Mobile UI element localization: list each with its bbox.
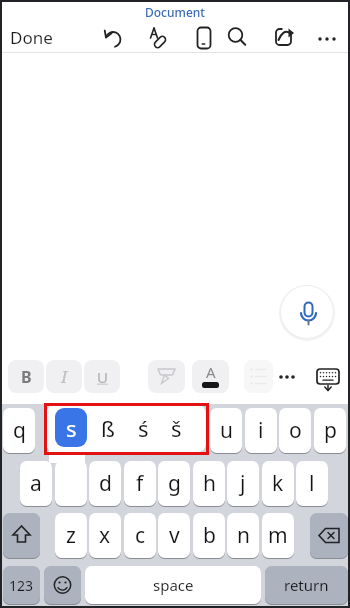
staticText: A: [206, 362, 216, 382]
button[interactable]: I: [46, 360, 82, 393]
staticText: k: [272, 469, 284, 498]
staticText: Document: [145, 4, 205, 20]
staticText: 123: [9, 576, 34, 595]
button[interactable]: z: [55, 513, 87, 558]
button[interactable]: U: [84, 360, 120, 393]
button[interactable]: 123: [3, 566, 40, 604]
staticText: v: [169, 521, 180, 550]
button[interactable]: [310, 513, 348, 558]
button[interactable]: m: [262, 513, 294, 558]
button[interactable]: [96, 22, 128, 54]
staticText: u: [220, 416, 233, 445]
button[interactable]: l: [296, 461, 328, 506]
button[interactable]: g: [158, 461, 190, 506]
button[interactable]: [244, 360, 273, 393]
staticText: U: [97, 367, 108, 387]
button[interactable]: u: [210, 408, 242, 453]
button[interactable]: B: [8, 360, 44, 393]
button[interactable]: [221, 21, 253, 53]
button[interactable]: [267, 21, 299, 53]
button[interactable]: h: [193, 461, 225, 506]
staticText: h: [203, 469, 216, 498]
button[interactable]: n: [227, 513, 259, 558]
staticText: I: [61, 365, 68, 388]
button[interactable]: A: [192, 360, 229, 393]
staticText: space: [153, 575, 194, 595]
button[interactable]: [311, 23, 343, 55]
button[interactable]: x: [89, 513, 121, 558]
button[interactable]: š: [162, 405, 190, 450]
button[interactable]: [44, 566, 81, 604]
staticText: return: [284, 575, 329, 595]
button[interactable]: k: [262, 461, 294, 506]
staticText: p: [324, 416, 337, 445]
staticText: Done: [10, 26, 53, 49]
staticText: l: [309, 469, 315, 498]
button[interactable]: [188, 22, 220, 54]
button[interactable]: f: [124, 461, 156, 506]
button[interactable]: [273, 363, 301, 391]
button[interactable]: d: [89, 461, 121, 506]
button[interactable]: Done: [10, 23, 62, 51]
button[interactable]: v: [158, 513, 190, 558]
button[interactable]: space: [85, 566, 261, 604]
button[interactable]: [3, 513, 40, 558]
button[interactable]: [148, 360, 185, 393]
staticText: a: [30, 469, 42, 498]
button[interactable]: o: [279, 408, 311, 453]
staticText: g: [168, 469, 181, 498]
button[interactable]: p: [314, 408, 346, 453]
button[interactable]: c: [124, 513, 156, 558]
button[interactable]: b: [193, 513, 225, 558]
staticText: o: [289, 416, 302, 445]
staticText: j: [240, 469, 246, 498]
button[interactable]: [313, 364, 343, 396]
button[interactable]: s: [55, 408, 87, 447]
staticText: n: [237, 521, 250, 550]
button[interactable]: a: [20, 461, 52, 506]
staticText: i: [258, 416, 264, 445]
button[interactable]: [278, 283, 336, 341]
button[interactable]: return: [265, 566, 348, 604]
button[interactable]: ß: [94, 405, 122, 450]
button[interactable]: j: [227, 461, 259, 506]
staticText: s: [66, 413, 77, 443]
button[interactable]: [141, 22, 173, 54]
button[interactable]: [55, 461, 87, 506]
staticText: c: [135, 521, 146, 550]
staticText: z: [66, 521, 76, 550]
staticText: ß: [101, 413, 115, 443]
staticText: ś: [138, 413, 149, 443]
staticText: š: [171, 413, 182, 443]
staticText: B: [21, 366, 32, 388]
staticText: x: [99, 521, 111, 550]
staticText: b: [203, 521, 216, 550]
button[interactable]: ś: [129, 405, 157, 450]
staticText: q: [13, 416, 26, 445]
button[interactable]: q: [3, 408, 35, 453]
staticText: f: [136, 469, 144, 498]
staticText: d: [99, 469, 112, 498]
button[interactable]: i: [245, 408, 277, 453]
staticText: m: [268, 521, 288, 550]
